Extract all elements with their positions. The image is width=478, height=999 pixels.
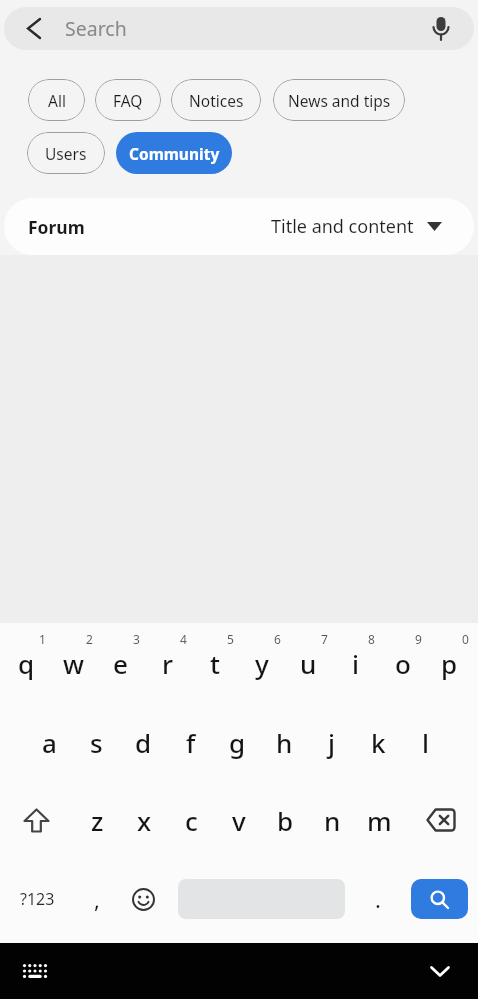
button[interactable]: ?123: [0, 859, 74, 939]
button[interactable]: .: [345, 859, 411, 939]
staticText: 9: [415, 631, 422, 647]
staticText: z: [91, 803, 104, 838]
button[interactable]: 6: [238, 623, 285, 703]
staticText: m: [367, 803, 392, 838]
staticText: FAQ: [113, 90, 143, 111]
staticText: 2: [86, 631, 93, 647]
staticText: 8: [368, 631, 375, 647]
staticText: u: [300, 646, 317, 681]
button[interactable]: [411, 879, 468, 919]
staticText: l: [422, 725, 430, 760]
button[interactable]: News and tips: [273, 79, 405, 121]
staticText: s: [90, 725, 103, 760]
staticText: w: [63, 646, 84, 681]
staticText: r: [162, 646, 173, 681]
button[interactable]: 3: [97, 623, 144, 703]
button[interactable]: 4: [144, 623, 191, 703]
button[interactable]: h: [261, 703, 308, 781]
button[interactable]: v: [215, 781, 262, 859]
button[interactable]: m: [356, 781, 403, 859]
button[interactable]: [0, 781, 73, 859]
staticText: e: [113, 646, 128, 681]
button[interactable]: 2: [50, 623, 97, 703]
button[interactable]: 9: [379, 623, 426, 703]
button[interactable]: z: [73, 781, 121, 859]
staticText: b: [277, 803, 294, 838]
staticText: c: [185, 803, 198, 838]
button[interactable]: 0: [426, 623, 473, 703]
staticText: y: [255, 646, 269, 681]
button[interactable]: [15, 951, 55, 991]
button[interactable]: [403, 781, 478, 859]
staticText: Title and content: [271, 214, 414, 239]
button[interactable]: s: [73, 703, 120, 781]
button[interactable]: 7: [285, 623, 332, 703]
staticText: .: [375, 884, 381, 914]
button[interactable]: a: [25, 703, 73, 781]
staticText: All: [48, 90, 66, 111]
button[interactable]: 8: [332, 623, 379, 703]
staticText: Forum: [28, 215, 85, 239]
staticText: i: [352, 646, 360, 681]
staticText: 7: [321, 631, 328, 647]
button[interactable]: l: [402, 703, 449, 781]
staticText: f: [186, 725, 196, 760]
button[interactable]: ,: [74, 859, 120, 939]
button[interactable]: d: [120, 703, 167, 781]
button[interactable]: c: [168, 781, 215, 859]
button[interactable]: All: [28, 79, 85, 121]
staticText: k: [371, 725, 386, 760]
staticText: Users: [45, 143, 87, 164]
staticText: t: [210, 646, 220, 681]
button[interactable]: [418, 949, 462, 993]
button[interactable]: n: [309, 781, 356, 859]
staticText: Notices: [189, 90, 244, 111]
staticText: 4: [180, 631, 187, 647]
button[interactable]: Search: [4, 7, 474, 50]
button[interactable]: f: [167, 703, 214, 781]
staticText: q: [18, 646, 35, 681]
staticText: 5: [227, 631, 234, 647]
button[interactable]: [120, 859, 166, 939]
button[interactable]: 5: [191, 623, 238, 703]
button[interactable]: b: [262, 781, 309, 859]
staticText: p: [441, 646, 458, 681]
button[interactable]: Users: [27, 132, 105, 174]
button[interactable]: g: [214, 703, 261, 781]
staticText: 6: [274, 631, 281, 647]
button[interactable]: FAQ: [95, 79, 161, 121]
staticText: v: [232, 803, 246, 838]
button[interactable]: 1: [2, 623, 50, 703]
staticText: n: [324, 803, 341, 838]
button[interactable]: j: [308, 703, 355, 781]
staticText: d: [135, 725, 152, 760]
staticText: ,: [94, 884, 100, 914]
staticText: ?123: [20, 888, 55, 910]
staticText: j: [328, 725, 336, 760]
staticText: x: [137, 803, 152, 838]
staticText: 0: [462, 631, 469, 647]
button[interactable]: k: [355, 703, 402, 781]
staticText: Search: [65, 15, 127, 42]
staticText: o: [395, 646, 411, 681]
staticText: Community: [129, 143, 220, 164]
staticText: 3: [133, 631, 140, 647]
staticText: a: [42, 725, 57, 760]
button[interactable]: Community: [116, 132, 232, 174]
button[interactable]: Notices: [171, 79, 261, 121]
button[interactable]: x: [121, 781, 168, 859]
staticText: h: [276, 725, 293, 760]
button[interactable]: Forum: [4, 198, 474, 255]
staticText: News and tips: [288, 90, 391, 111]
staticText: 1: [39, 631, 46, 647]
staticText: g: [229, 725, 246, 760]
